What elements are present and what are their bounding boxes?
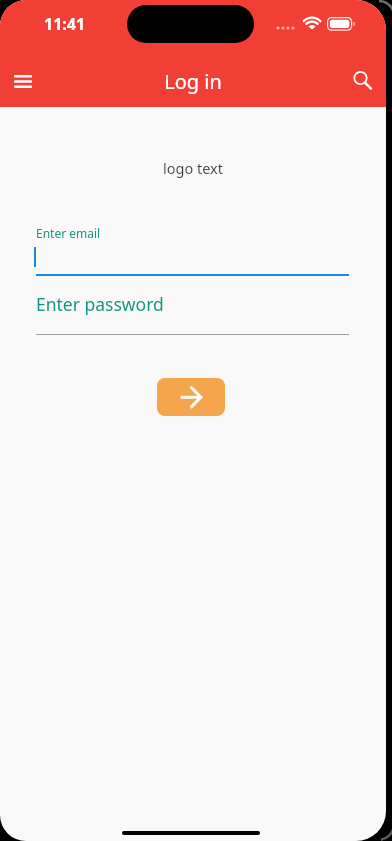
button[interactable]: Enter password [36, 292, 349, 335]
staticText: 11:41 [44, 13, 86, 35]
button[interactable] [36, 244, 349, 276]
button[interactable] [157, 378, 225, 416]
staticText: Enter email [36, 225, 101, 241]
staticText: Enter password [36, 292, 164, 316]
button[interactable] [341, 59, 383, 101]
staticText: Log in [0, 68, 386, 95]
button[interactable] [6, 65, 40, 97]
staticText: logo text [0, 158, 386, 178]
